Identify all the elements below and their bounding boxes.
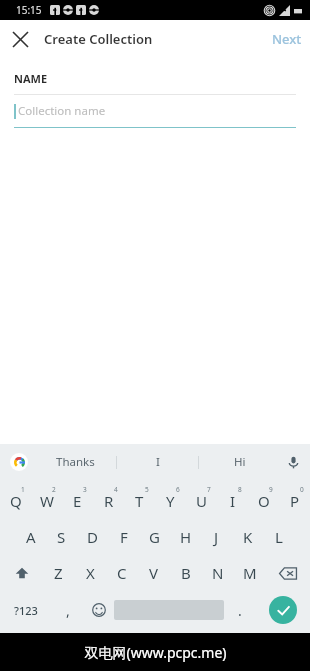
staticText: I xyxy=(230,491,236,511)
button[interactable]: Q xyxy=(0,483,31,519)
button[interactable]: C xyxy=(106,555,138,591)
button[interactable]: B xyxy=(170,555,202,591)
button[interactable]: . xyxy=(224,591,255,629)
button[interactable]: Y xyxy=(155,483,186,519)
staticText: 2 xyxy=(52,485,56,494)
staticText: 1 xyxy=(21,485,25,494)
staticText: A xyxy=(26,527,36,547)
staticText: Thanks xyxy=(56,454,95,470)
staticText: E xyxy=(73,491,82,511)
button[interactable]: Thanks xyxy=(34,444,116,480)
button[interactable]: I xyxy=(117,444,198,480)
staticText: V xyxy=(149,563,159,583)
staticText: T xyxy=(135,491,144,511)
button[interactable]: F xyxy=(108,519,139,555)
staticText: P xyxy=(290,491,300,511)
button[interactable]: Z xyxy=(43,555,74,591)
button[interactable]: Emoji xyxy=(83,591,114,629)
staticText: O xyxy=(258,491,270,511)
button[interactable]: W xyxy=(31,483,62,519)
button[interactable]: Done xyxy=(255,591,310,629)
button[interactable]: E xyxy=(62,483,93,519)
button[interactable]: L xyxy=(263,519,294,555)
staticText: Z xyxy=(54,563,63,583)
staticText: Q xyxy=(10,491,22,511)
button[interactable]: Voice input xyxy=(282,451,304,473)
staticText: 双电网(www.pcpc.me) xyxy=(84,643,227,662)
staticText: Create Collection xyxy=(44,30,153,48)
staticText: Y xyxy=(166,491,175,511)
staticText: NAME xyxy=(14,71,48,86)
staticText: I xyxy=(156,454,160,470)
staticText: L xyxy=(275,527,283,547)
button[interactable]: I xyxy=(217,483,248,519)
button[interactable]: H xyxy=(170,519,201,555)
button[interactable]: X xyxy=(74,555,106,591)
staticText: Collection name xyxy=(18,103,106,119)
button[interactable]: Hi xyxy=(199,444,280,480)
button[interactable]: S xyxy=(46,519,77,555)
staticText: W xyxy=(40,491,54,511)
staticText: R xyxy=(104,491,114,511)
staticText: 4 xyxy=(114,485,118,494)
staticText: ?123 xyxy=(14,603,38,618)
button[interactable]: ?123 xyxy=(0,591,52,629)
staticText: F xyxy=(120,527,128,547)
staticText: 7 xyxy=(207,485,211,494)
button[interactable]: U xyxy=(186,483,217,519)
staticText: 6 xyxy=(176,485,180,494)
button[interactable]: K xyxy=(232,519,263,555)
button[interactable]: O xyxy=(248,483,279,519)
staticText: . xyxy=(238,601,242,620)
staticText: Next xyxy=(272,30,302,48)
button[interactable]: Google xyxy=(10,453,28,471)
staticText: 9 xyxy=(269,485,273,494)
button[interactable]: J xyxy=(201,519,232,555)
staticText: Hi xyxy=(234,454,246,470)
button[interactable]: D xyxy=(77,519,108,555)
button[interactable]: R xyxy=(93,483,124,519)
staticText: C xyxy=(117,563,127,583)
staticText: B xyxy=(181,563,191,583)
staticText: 8 xyxy=(238,485,242,494)
button[interactable]: Next xyxy=(264,24,310,54)
staticText: , xyxy=(66,601,70,620)
button[interactable]: T xyxy=(124,483,155,519)
staticText: M xyxy=(243,563,257,583)
staticText: U xyxy=(196,491,207,511)
staticText: K xyxy=(243,527,253,547)
button[interactable]: Shift xyxy=(0,555,43,591)
staticText: 5 xyxy=(145,485,149,494)
staticText: S xyxy=(57,527,66,547)
button[interactable]: A xyxy=(15,519,46,555)
button[interactable]: G xyxy=(139,519,170,555)
staticText: G xyxy=(149,527,160,547)
staticText: J xyxy=(214,527,219,547)
staticText: 15:15 xyxy=(16,3,42,17)
staticText: 0 xyxy=(300,485,304,494)
button[interactable]: Close xyxy=(6,25,34,53)
button[interactable]: P xyxy=(279,483,310,519)
button[interactable]: Collection name xyxy=(14,95,296,127)
staticText: D xyxy=(87,527,98,547)
staticText: 3 xyxy=(83,485,87,494)
button[interactable]: N xyxy=(202,555,234,591)
staticText: N xyxy=(212,563,224,583)
button[interactable]: Backspace xyxy=(266,555,310,591)
staticText: X xyxy=(86,563,95,583)
staticText: H xyxy=(180,527,192,547)
button[interactable]: M xyxy=(234,555,266,591)
button[interactable]: , xyxy=(52,591,83,629)
button[interactable]: V xyxy=(138,555,170,591)
